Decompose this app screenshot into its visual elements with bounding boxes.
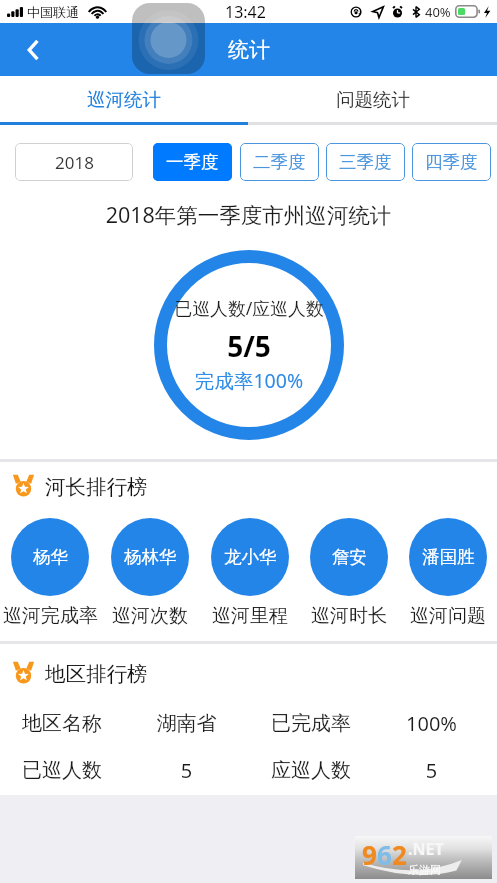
staticText: 杨林华 [124,546,177,568]
staticText: 巡河次数 [112,604,188,628]
button[interactable]: 三季度 [326,143,405,181]
button[interactable]: 巡河统计 [0,76,248,122]
button[interactable]: 杨林华 [100,518,200,628]
staticText: 9 [362,837,377,872]
staticText: 6 [377,837,392,872]
button[interactable]: 问题统计 [248,76,497,122]
button[interactable]: 2018 [15,143,133,181]
staticText: 13:42 [225,1,266,23]
staticText: 40% [425,3,451,21]
staticText: 河长排行榜 [45,474,148,500]
staticText: 5 [366,757,497,784]
staticText: 杨华 [33,546,68,568]
button[interactable]: 潘国胜 [398,518,497,628]
staticText: 统计 [228,37,270,63]
staticText: 中国联通 [27,4,79,20]
staticText: 巡河完成率 [3,604,98,628]
staticText: 二季度 [253,151,306,173]
staticText: 已完成率 [271,711,366,736]
staticText: 地区名称 [22,711,134,736]
staticText: 湖南省 [134,711,239,736]
staticText: 巡河统计 [87,88,161,111]
button[interactable]: 一季度 [153,143,232,181]
staticText: 巡河时长 [311,604,387,628]
staticText: 2018 [55,151,94,174]
button[interactable]: 詹安 [299,518,398,628]
staticText: 詹安 [332,546,367,568]
staticText: 四季度 [425,151,478,173]
staticText: 巡河里程 [212,604,288,628]
staticText: 乐游网 [408,863,441,877]
staticText: 已巡人数 [22,758,134,783]
staticText: .NET [408,838,444,860]
staticText: 已巡人数/应巡人数 [154,296,344,320]
staticText: 2018年第一季度市州巡河统计 [0,200,497,229]
button[interactable]: 杨华 [0,518,100,628]
staticText: 问题统计 [336,88,410,111]
staticText: 5 [134,757,239,784]
button[interactable]: 返回 [9,26,57,74]
staticText: 三季度 [339,151,392,173]
staticText: 龙小华 [224,546,277,568]
staticText: 完成率100% [154,367,344,394]
button[interactable]: 二季度 [240,143,319,181]
button[interactable]: 龙小华 [200,518,299,628]
staticText: 潘国胜 [422,546,475,568]
staticText: 一季度 [166,151,219,173]
staticText: 巡河问题 [410,604,486,628]
staticText: 地区排行榜 [45,661,148,687]
staticText: 应巡人数 [271,758,366,783]
staticText: 2 [392,837,407,872]
staticText: 100% [366,710,497,737]
staticText: 5/5 [154,327,344,365]
button[interactable]: 四季度 [412,143,491,181]
